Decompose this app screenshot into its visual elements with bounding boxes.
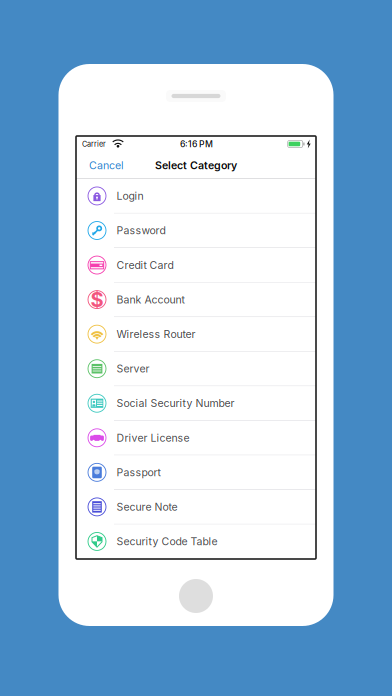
- staticText: Login: [116, 190, 143, 202]
- staticText: Credit Card: [116, 259, 173, 271]
- staticText: Password: [116, 224, 165, 237]
- staticText: 6:16 PM: [180, 139, 213, 149]
- staticText: Wireless Router: [116, 328, 195, 340]
- button[interactable]: $: [76, 283, 316, 317]
- staticText: Passport: [116, 466, 160, 479]
- staticText: Cancel: [89, 159, 124, 172]
- button[interactable]: Wireless Router: [76, 317, 316, 352]
- staticText: Driver License: [116, 431, 189, 444]
- staticText: Bank Account: [116, 293, 184, 306]
- button[interactable]: Credit Card: [76, 248, 316, 283]
- button[interactable]: Login: [76, 179, 316, 213]
- staticText: Carrier: [82, 139, 106, 148]
- staticText: $: [90, 287, 103, 312]
- button[interactable]: Social Security Number: [76, 386, 316, 421]
- button[interactable]: Cancel: [76, 152, 137, 179]
- button[interactable]: Secure Note: [76, 490, 316, 524]
- button[interactable]: Password: [76, 213, 316, 248]
- button[interactable]: Server: [76, 352, 316, 386]
- staticText: Server: [116, 362, 149, 375]
- button[interactable]: Security Code Table: [76, 524, 316, 559]
- button[interactable]: Driver License: [76, 421, 316, 455]
- staticText: Select Category: [155, 159, 237, 172]
- button[interactable]: Passport: [76, 455, 316, 490]
- staticText: Security Code Table: [116, 535, 217, 548]
- staticText: Secure Note: [116, 500, 177, 513]
- staticText: Social Security Number: [116, 397, 234, 410]
